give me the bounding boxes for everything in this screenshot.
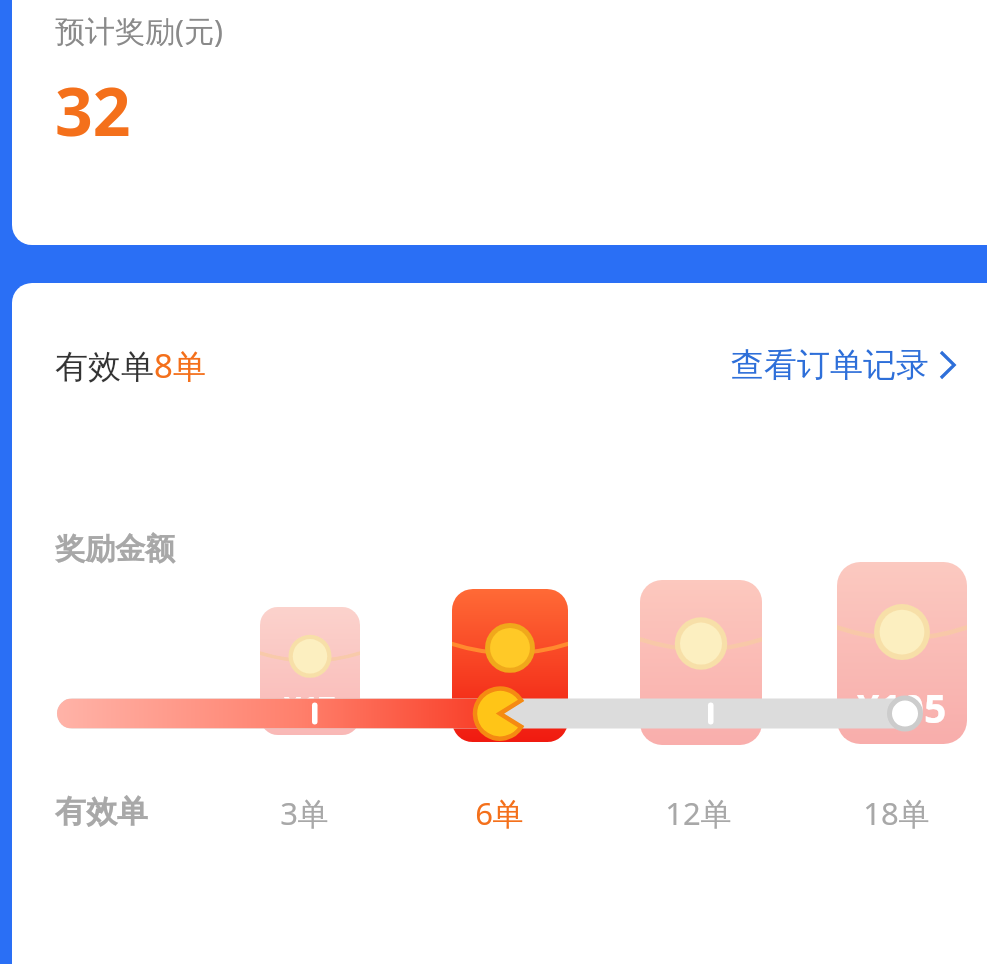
button[interactable]: ¥32 <box>452 589 568 742</box>
staticText: 查看订单记录 <box>731 344 929 386</box>
staticText: 6单 <box>475 792 524 834</box>
staticText: 有效单8单 <box>55 343 206 388</box>
button[interactable]: ¥17 <box>260 607 360 735</box>
staticText: ¥17 <box>284 687 336 728</box>
staticText: ¥32 <box>480 687 540 734</box>
staticText: 18单 <box>863 792 930 834</box>
staticText: 奖励金额 <box>55 530 175 568</box>
staticText: 3单 <box>280 792 329 834</box>
staticText: ¥105 <box>857 681 947 734</box>
button[interactable]: 查看订单记录 <box>727 340 959 390</box>
staticText: 预计奖励(元) <box>55 10 223 51</box>
staticText: 有效单 <box>55 792 148 831</box>
staticText: 12单 <box>665 792 732 834</box>
button[interactable]: ¥67 <box>640 580 762 745</box>
staticText: ¥67 <box>670 686 733 736</box>
button[interactable]: Reward progress slider <box>12 680 987 772</box>
button[interactable]: ¥105 <box>837 562 967 744</box>
staticText: 32 <box>55 65 131 155</box>
